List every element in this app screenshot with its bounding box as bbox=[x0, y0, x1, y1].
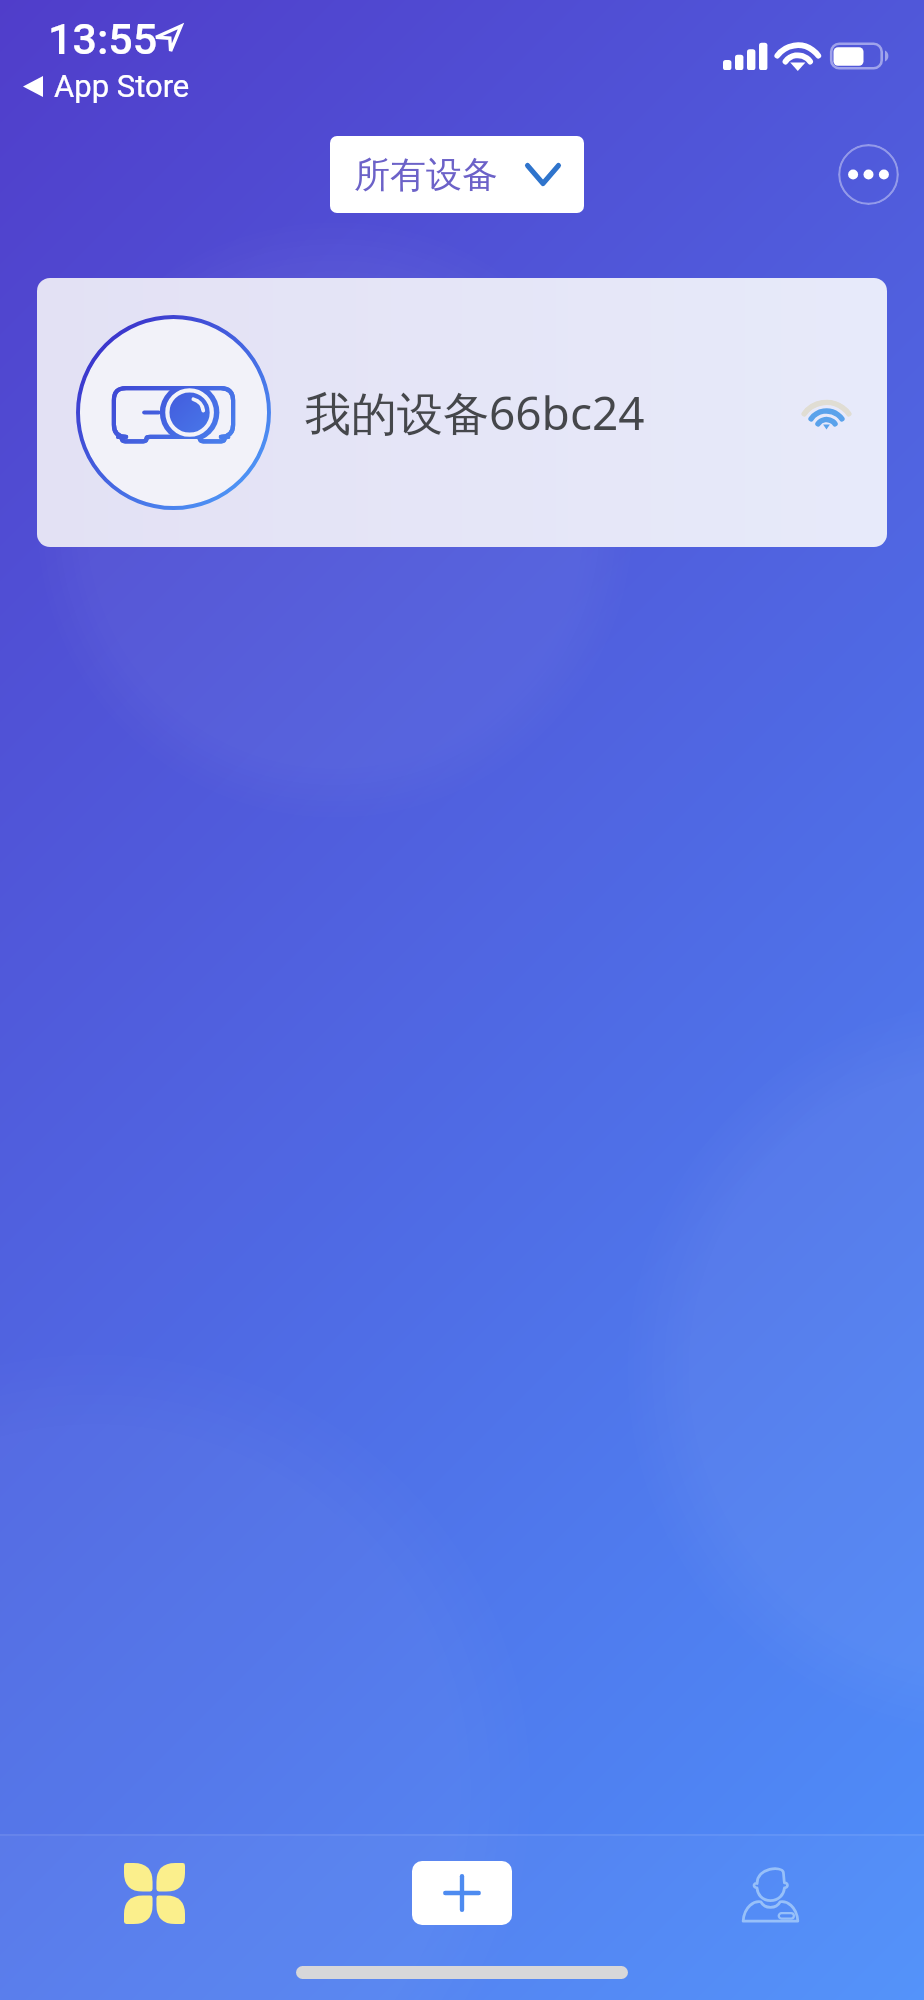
button[interactable]: 我的设备66bc24 bbox=[37, 278, 887, 547]
button[interactable]: Profile bbox=[616, 1836, 924, 1950]
button[interactable]: Add device bbox=[412, 1861, 512, 1925]
staticText: 所有设备 bbox=[354, 152, 498, 197]
staticText: App Store bbox=[54, 68, 190, 104]
staticText: 我的设备66bc24 bbox=[305, 381, 645, 444]
button[interactable]: More options bbox=[838, 144, 899, 205]
staticText: 13:55 bbox=[48, 14, 158, 64]
button[interactable]: 所有设备 bbox=[330, 136, 584, 213]
button[interactable]: Devices bbox=[0, 1836, 308, 1950]
